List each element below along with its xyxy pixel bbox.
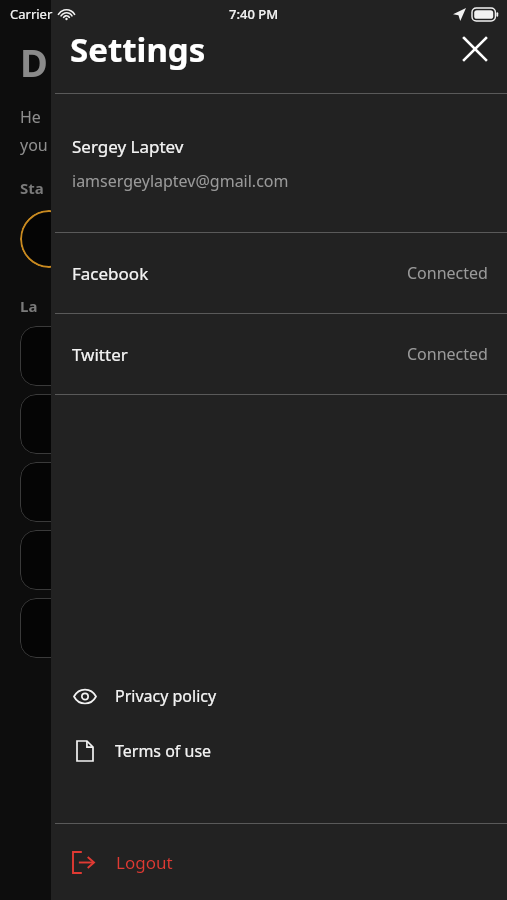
staticText: Settings	[70, 27, 206, 72]
staticText: Privacy policy	[115, 685, 217, 707]
staticText: Sergey Laptev	[72, 135, 184, 158]
staticText: Sta	[20, 178, 44, 198]
staticText: La	[20, 296, 38, 316]
staticText: Terms of use	[115, 740, 212, 762]
button[interactable]: Privacy policy	[51, 668, 507, 723]
staticText: Twitter	[72, 343, 128, 366]
staticText: Facebook	[72, 262, 149, 285]
button[interactable]: Close	[451, 25, 499, 73]
button[interactable]: Terms of use	[51, 723, 507, 778]
button[interactable]: Twitter	[51, 314, 507, 394]
staticText: 7:40 PM	[229, 5, 279, 23]
staticText: D	[20, 36, 48, 88]
button[interactable]: Logout	[51, 824, 507, 900]
button[interactable]: Facebook	[51, 233, 507, 313]
staticText: He	[20, 106, 41, 128]
staticText: Connected	[407, 343, 488, 365]
staticText: iamsergeylaptev@gmail.com	[72, 170, 289, 192]
staticText: Carrier	[10, 5, 53, 23]
staticText: you	[20, 134, 48, 156]
staticText: Logout	[116, 851, 173, 874]
staticText: Connected	[407, 262, 488, 284]
button[interactable]: Sergey Laptev	[51, 94, 507, 232]
